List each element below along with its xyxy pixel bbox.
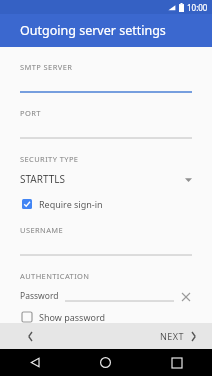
button[interactable]: Require sign-in <box>22 198 103 210</box>
button[interactable]: Show password <box>22 311 105 323</box>
staticText: Require sign-in <box>39 198 103 210</box>
staticText: AUTHENTICATION <box>20 271 90 281</box>
button[interactable]: SMTP SERVER <box>20 62 192 93</box>
button[interactable]: PORT <box>20 108 192 139</box>
staticText: PORT <box>20 108 41 118</box>
staticText: STARTTLS <box>20 172 185 186</box>
staticText: SMTP SERVER <box>20 62 73 72</box>
staticText: USERNAME <box>20 225 64 235</box>
button[interactable] <box>65 289 174 303</box>
button[interactable]: NEXT <box>144 323 212 349</box>
button[interactable]: Clear password <box>179 290 192 303</box>
button[interactable]: USERNAME <box>20 225 192 256</box>
staticText: Outgoing server settings <box>20 22 166 39</box>
button[interactable]: Back <box>0 323 60 349</box>
staticText: NEXT <box>160 330 185 342</box>
staticText: Show password <box>39 311 105 323</box>
staticText: Password <box>20 290 59 302</box>
button[interactable]: STARTTLS <box>20 171 192 187</box>
staticText: 10:00 <box>187 2 208 13</box>
staticText: SECURITY TYPE <box>20 154 79 164</box>
button[interactable]: Home <box>70 349 141 376</box>
button[interactable]: Back <box>0 349 70 376</box>
button[interactable]: Recent apps <box>141 349 212 376</box>
